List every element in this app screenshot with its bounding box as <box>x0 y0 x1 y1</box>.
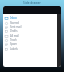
button[interactable]: All mail <box>3 34 61 38</box>
button[interactable]: Drafts <box>3 29 61 33</box>
staticText: Spam <box>10 42 17 46</box>
button[interactable]: Starred <box>3 21 61 25</box>
button[interactable]: Spam <box>3 42 61 46</box>
staticText: All mail <box>10 34 19 38</box>
button[interactable]: Labels <box>3 47 61 51</box>
staticText: Labels <box>10 47 18 51</box>
staticText: Inbox <box>10 16 17 20</box>
staticText: Starred <box>10 21 19 25</box>
button[interactable]: Trash <box>3 38 61 42</box>
staticText: Trash <box>10 38 17 42</box>
staticText: Side drawer <box>23 1 41 5</box>
button[interactable]: Sent mail <box>3 25 61 29</box>
button[interactable]: Inbox <box>3 16 61 20</box>
staticText: Drafts <box>10 29 18 33</box>
staticText: Sent mail <box>10 25 22 29</box>
